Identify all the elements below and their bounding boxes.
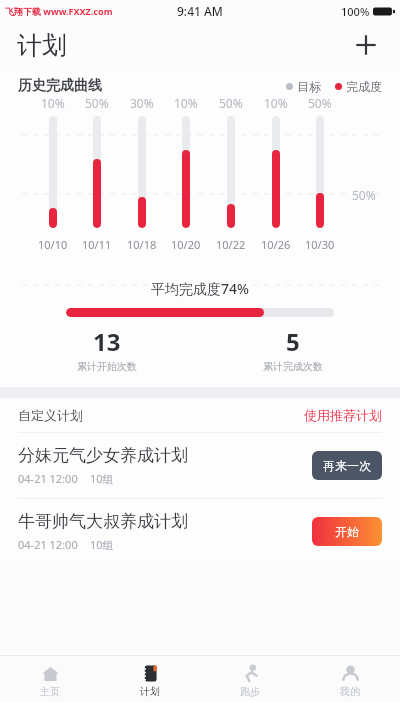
staticText: 完成度 (346, 79, 382, 94)
staticText: 50% (219, 95, 243, 111)
staticText: 50% (85, 95, 109, 111)
staticText: 计划 (140, 685, 160, 698)
staticText: 04-21 12:00 (18, 537, 78, 552)
staticText: 开始 (335, 524, 359, 539)
button[interactable]: 使用推荐计划 (304, 407, 382, 423)
staticText: 10/30 (305, 237, 335, 252)
staticText: 计划 (17, 30, 67, 61)
button[interactable]: 再来一次 (312, 451, 382, 480)
staticText: 平均完成度74% (0, 279, 400, 298)
staticText: 100% (341, 4, 370, 19)
staticText: 自定义计划 (18, 407, 83, 423)
staticText: 主页 (40, 685, 60, 698)
button[interactable]: 开始 (312, 517, 382, 546)
staticText: 累计开始次数 (77, 360, 137, 373)
staticText: 10/11 (82, 237, 112, 252)
staticText: 10% (41, 95, 65, 111)
staticText: 04-21 12:00 (18, 471, 78, 486)
staticText: 10/22 (216, 237, 246, 252)
staticText: 10/20 (171, 237, 201, 252)
staticText: 使用推荐计划 (304, 407, 382, 423)
staticText: 10/10 (38, 237, 68, 252)
staticText: 10/26 (261, 237, 291, 252)
button[interactable]: 主页 (0, 661, 100, 698)
staticText: 历史完成曲线 (18, 77, 102, 95)
staticText: 10% (264, 95, 288, 111)
button[interactable]: 牛哥帅气大叔养成计划 (0, 499, 400, 564)
button[interactable]: 计划 (100, 661, 200, 698)
staticText: 50% (308, 95, 332, 111)
staticText: 13 (93, 325, 121, 358)
staticText: 30% (130, 95, 154, 111)
button[interactable]: 跑步 (200, 661, 300, 698)
staticText: 10% (174, 95, 198, 111)
staticText: 跑步 (240, 685, 260, 698)
staticText: 50% (352, 187, 376, 203)
staticText: 我的 (340, 685, 360, 698)
staticText: 目标 (297, 79, 321, 94)
staticText: 牛哥帅气大叔养成计划 (18, 511, 188, 532)
staticText: 累计完成次数 (263, 360, 323, 373)
staticText: 再来一次 (323, 458, 371, 473)
staticText: 9:41 AM (177, 3, 223, 19)
staticText: 5 (286, 325, 300, 358)
button[interactable]: 分妹元气少女养成计划 (0, 433, 400, 498)
staticText: 10/18 (127, 237, 157, 252)
staticText: 分妹元气少女养成计划 (18, 445, 188, 466)
staticText: 10组 (90, 471, 114, 486)
staticText: 飞翔下载 www.FXXZ.com (5, 5, 113, 17)
button[interactable]: 我的 (300, 661, 400, 698)
button[interactable]: Add plan (350, 29, 382, 61)
staticText: 10组 (90, 537, 114, 552)
